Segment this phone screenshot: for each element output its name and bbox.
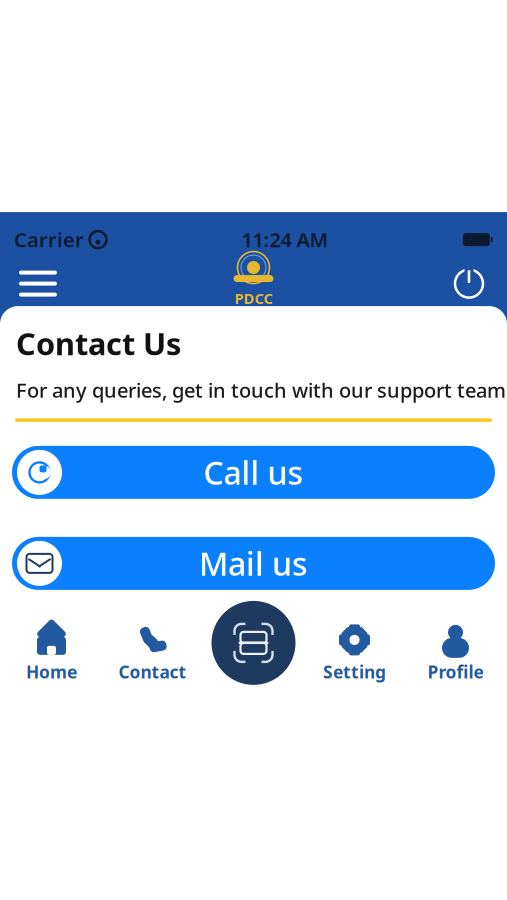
staticText: Profile [427, 660, 483, 683]
button[interactable]: Scan [203, 601, 304, 685]
button[interactable]: Home [1, 587, 102, 699]
button[interactable]: Contact [102, 587, 203, 699]
staticText: Carrier [14, 226, 84, 253]
staticText: PDCC [234, 289, 272, 308]
staticText: Contact [118, 660, 186, 683]
button[interactable]: Menu [12, 262, 64, 306]
button[interactable]: Call us [12, 446, 495, 499]
staticText: Contact Us [16, 323, 181, 364]
button[interactable]: Power [443, 262, 495, 306]
staticText: For any queries, get in touch with our s… [16, 377, 506, 403]
button[interactable]: Profile [405, 587, 506, 699]
button[interactable]: Setting [304, 587, 405, 699]
staticText: Setting [323, 660, 386, 683]
staticText: 11:24 AM [241, 226, 328, 253]
button[interactable]: Mail us [12, 537, 495, 590]
staticText: Home [26, 660, 77, 683]
staticText: Mail us [199, 542, 308, 585]
staticText: Call us [203, 451, 303, 494]
